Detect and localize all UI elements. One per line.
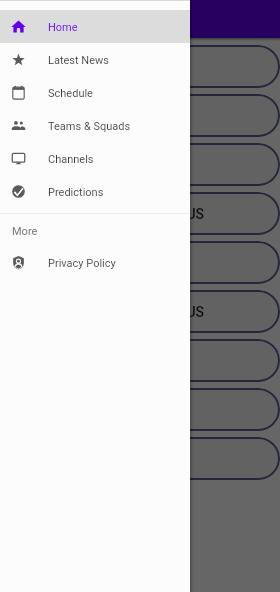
button[interactable]: Match 2 - Group A (0, 94, 280, 137)
button[interactable]: Match 7 - Group C (0, 339, 280, 382)
staticText: India vs AUS (16, 206, 204, 222)
staticText: Match 2 - Group A (16, 108, 182, 124)
staticText: Schedule (48, 87, 93, 100)
staticText: Match 5 - Group B (16, 255, 182, 271)
button[interactable]: Match 1 - Group A (0, 45, 280, 88)
button[interactable]: Schedule (0, 76, 190, 109)
button[interactable]: India vs AUS (0, 192, 280, 235)
button[interactable]: Teams & Squads (0, 109, 190, 142)
button[interactable]: Predictions (0, 175, 190, 208)
button[interactable]: Home (0, 10, 190, 43)
staticText: Privacy Policy (48, 257, 116, 270)
button[interactable]: Match 8 - Group C (0, 388, 280, 431)
staticText: Teams & Squads (48, 120, 131, 133)
staticText: Latest News (48, 54, 109, 67)
staticText: Channels (48, 153, 94, 166)
staticText: Match 3 - Group B (16, 157, 182, 173)
button[interactable]: Match 5 - Group B (0, 241, 280, 284)
button[interactable]: England vs AUS (0, 290, 280, 333)
button[interactable]: Match 3 - Group B (0, 143, 280, 186)
button[interactable]: Latest News (0, 43, 190, 76)
button[interactable]: Privacy Policy (0, 246, 190, 279)
staticText: More (12, 225, 38, 238)
staticText: Match 1 - Group A (16, 59, 182, 75)
staticText: Home (48, 21, 78, 34)
staticText: England vs AUS (16, 304, 204, 320)
button[interactable]: Channels (0, 142, 190, 175)
staticText: Predictions (48, 186, 104, 199)
button[interactable]: Match 9 - Group D (0, 437, 280, 480)
